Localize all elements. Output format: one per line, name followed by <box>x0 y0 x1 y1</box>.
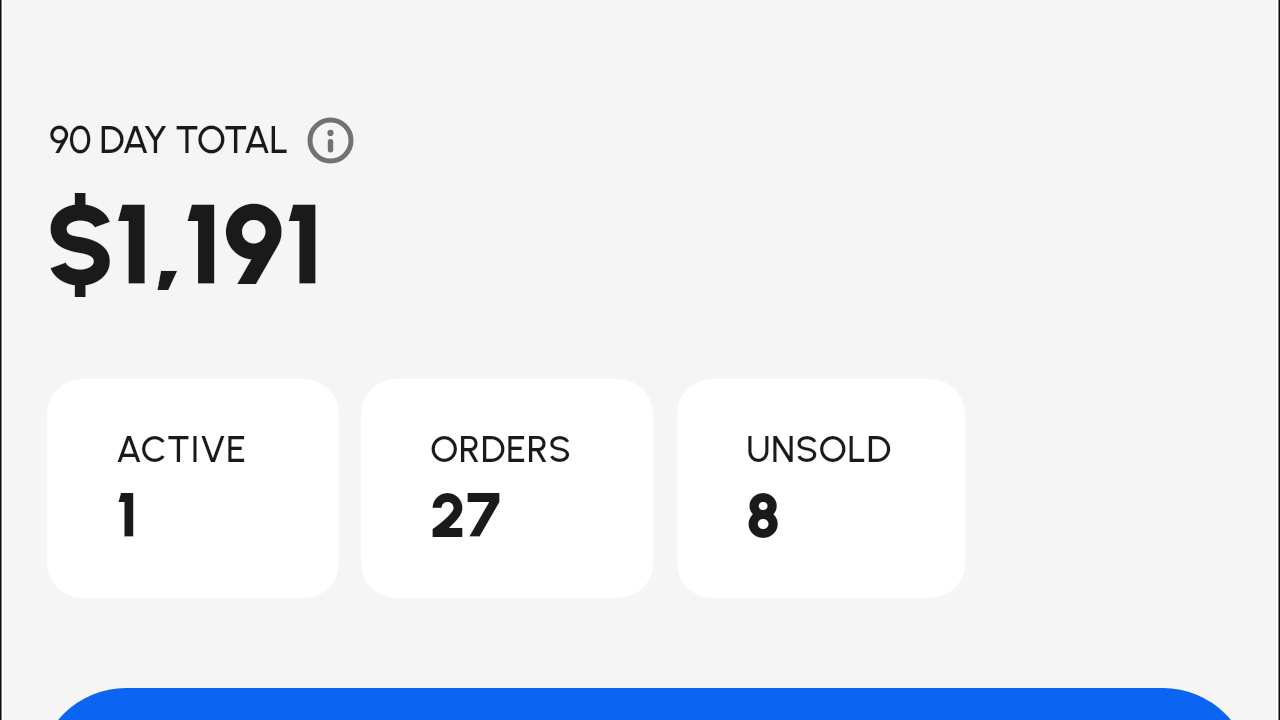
staticText: ORDERS <box>430 427 572 471</box>
button[interactable]: UNSOLD <box>677 379 965 598</box>
button[interactable]: ORDERS <box>361 379 653 598</box>
staticText: 1 <box>116 478 139 552</box>
button[interactable]: Info about the 90 day total <box>307 117 354 164</box>
staticText: 8 <box>746 478 781 552</box>
staticText: 27 <box>430 478 501 552</box>
staticText: UNSOLD <box>746 427 892 471</box>
button[interactable]: ACTIVE <box>47 379 339 598</box>
staticText: $1,191 <box>46 178 324 312</box>
staticText: 90 DAY TOTAL <box>49 117 288 163</box>
button[interactable]: List an item <box>38 688 1251 720</box>
staticText: ACTIVE <box>116 427 247 471</box>
button[interactable]: 90 DAY TOTAL <box>44 114 294 168</box>
